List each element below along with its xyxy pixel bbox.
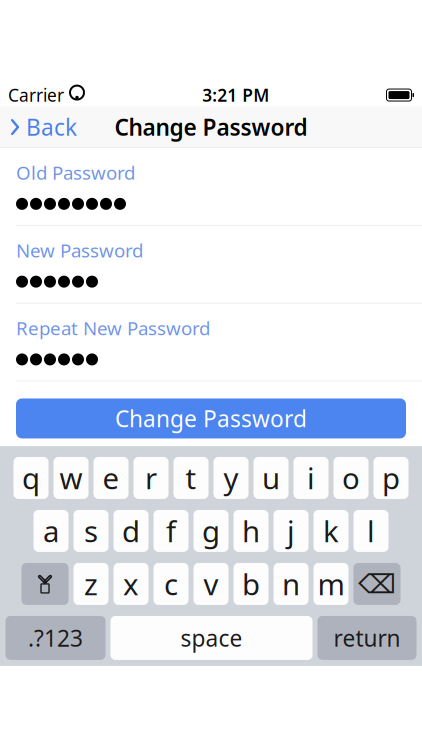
button[interactable]: q <box>13 457 48 499</box>
staticText: Old Password <box>16 160 135 185</box>
button[interactable]: u <box>253 457 288 499</box>
button[interactable]: c <box>153 563 188 605</box>
staticText: d <box>122 511 140 550</box>
staticText: x <box>123 564 139 603</box>
staticText: space <box>180 623 242 653</box>
button[interactable]: o <box>333 457 368 499</box>
button[interactable]: space <box>110 616 312 660</box>
staticText: n <box>282 564 300 603</box>
staticText: .?123 <box>28 623 83 653</box>
button[interactable]: Delete <box>353 563 400 605</box>
staticText: u <box>262 458 280 497</box>
staticText: ⌫ <box>358 569 396 599</box>
staticText: s <box>84 511 98 550</box>
button[interactable]: Change Password <box>16 398 406 438</box>
staticText <box>64 84 69 107</box>
staticText: r <box>145 458 157 497</box>
button[interactable]: k <box>313 510 348 552</box>
button[interactable]: s <box>73 510 108 552</box>
staticText: Back <box>26 112 77 142</box>
staticText: k <box>323 511 339 550</box>
button[interactable]: l <box>353 510 388 552</box>
staticText: a <box>43 511 59 550</box>
button[interactable]: m <box>313 563 348 605</box>
button[interactable]: e <box>93 457 128 499</box>
staticText: w <box>59 458 82 497</box>
staticText: t <box>185 458 196 497</box>
staticText: g <box>202 511 220 550</box>
staticText: l <box>367 511 375 550</box>
staticText: e <box>102 458 119 497</box>
button[interactable]: a <box>33 510 68 552</box>
staticText: f <box>166 511 176 550</box>
staticText: Change Password <box>114 112 307 142</box>
button[interactable]: v <box>193 563 228 605</box>
button[interactable]: d <box>113 510 148 552</box>
button[interactable]: return <box>317 616 416 660</box>
staticText: o <box>342 458 360 497</box>
staticText: z <box>84 564 98 603</box>
button[interactable]: i <box>293 457 328 499</box>
button[interactable]: Shift <box>21 563 68 605</box>
staticText: y <box>223 458 238 497</box>
staticText: v <box>203 564 218 603</box>
button[interactable]: r <box>133 457 168 499</box>
staticText: 3:21 PM <box>202 84 269 107</box>
button[interactable]: p <box>373 457 408 499</box>
staticText: i <box>307 458 315 497</box>
staticText: m <box>317 564 344 603</box>
staticText: Carrier <box>8 84 64 107</box>
button[interactable]: j <box>273 510 308 552</box>
staticText: h <box>242 511 260 550</box>
staticText: New Password <box>16 238 143 263</box>
button[interactable]: n <box>273 563 308 605</box>
button[interactable]: h <box>233 510 268 552</box>
button[interactable]: .?123 <box>5 616 105 660</box>
button[interactable]: t <box>173 457 208 499</box>
button[interactable]: b <box>233 563 268 605</box>
staticText: Repeat New Password <box>16 316 210 340</box>
staticText: return <box>333 623 400 653</box>
staticText: Change Password <box>115 403 307 433</box>
button[interactable]: y <box>213 457 248 499</box>
staticText: c <box>164 564 178 603</box>
staticText: b <box>242 564 260 603</box>
staticText: j <box>287 511 295 550</box>
button[interactable]: z <box>73 563 108 605</box>
staticText: q <box>22 458 40 497</box>
button[interactable]: f <box>153 510 188 552</box>
button[interactable]: x <box>113 563 148 605</box>
button[interactable]: g <box>193 510 228 552</box>
button[interactable]: w <box>53 457 88 499</box>
button[interactable]: Back <box>0 106 77 148</box>
staticText: p <box>382 458 400 497</box>
